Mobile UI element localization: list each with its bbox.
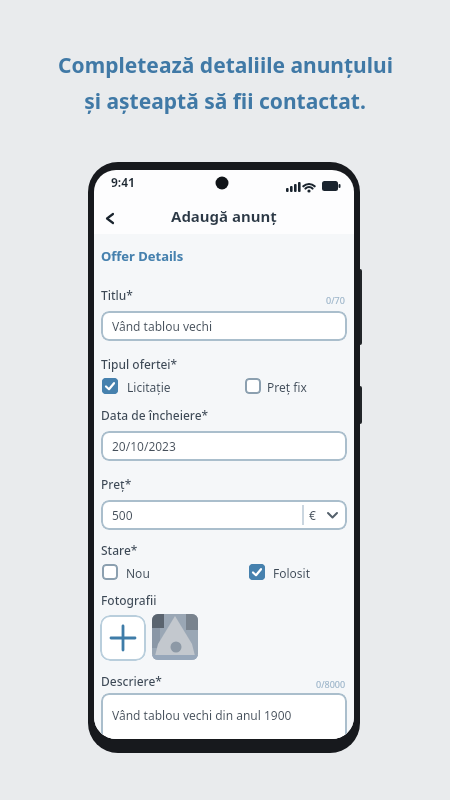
staticText: Vând tablou vechi: [112, 318, 213, 334]
button[interactable]: Vând tablou vechi din anul 1900: [101, 693, 347, 739]
staticText: Data de încheiere*: [101, 407, 209, 423]
staticText: 0/8000: [316, 678, 346, 690]
staticText: 500: [112, 507, 133, 523]
button[interactable]: 20/10/2023: [101, 431, 347, 461]
button[interactable]: 500: [101, 500, 347, 530]
staticText: Preț fix: [267, 379, 307, 395]
staticText: și așteaptă să fii contactat.: [84, 87, 366, 116]
button[interactable]: [102, 564, 118, 580]
staticText: Preț*: [101, 476, 132, 492]
button[interactable]: [245, 378, 261, 394]
button[interactable]: [100, 615, 146, 661]
staticText: Tipul ofertei*: [101, 356, 178, 372]
staticText: 9:41: [111, 174, 135, 190]
staticText: Nou: [126, 565, 150, 581]
staticText: Titlu*: [101, 287, 133, 303]
staticText: Vând tablou vechi din anul 1900: [112, 707, 292, 723]
staticText: Completează detaliile anunțului: [58, 51, 393, 80]
staticText: Adaugă anunț: [171, 206, 277, 226]
staticText: 20/10/2023: [112, 438, 176, 454]
staticText: Fotografii: [101, 592, 157, 608]
staticText: Stare*: [101, 542, 138, 558]
button[interactable]: [249, 564, 265, 580]
button[interactable]: Vând tablou vechi: [101, 311, 347, 341]
staticText: Offer Details: [101, 247, 184, 265]
button[interactable]: [100, 207, 126, 231]
staticText: Descriere*: [101, 673, 162, 689]
staticText: Licitație: [127, 379, 171, 395]
button[interactable]: [152, 614, 198, 660]
staticText: €: [309, 507, 316, 523]
button[interactable]: [102, 378, 118, 394]
staticText: 0/70: [326, 294, 345, 306]
staticText: Folosit: [273, 565, 311, 581]
